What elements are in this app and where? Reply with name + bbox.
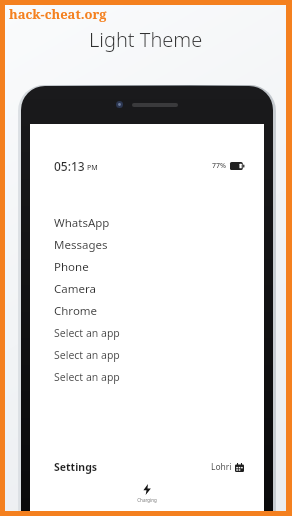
button[interactable]: Phone <box>30 256 264 278</box>
staticText: 05:13 <box>54 158 85 174</box>
button[interactable]: Lohri <box>211 461 244 473</box>
button[interactable]: Select an app <box>30 322 264 344</box>
staticText: WhatsApp <box>54 215 110 231</box>
staticText: Phone <box>54 259 89 275</box>
staticText: Messages <box>54 237 108 253</box>
staticText: Select an app <box>54 348 120 362</box>
staticText: PM <box>87 163 98 173</box>
staticText: Charging <box>137 497 157 503</box>
staticText: Select an app <box>54 326 120 340</box>
button[interactable]: Messages <box>30 234 264 256</box>
button[interactable]: Settings <box>54 460 98 474</box>
staticText: 77% <box>212 161 226 171</box>
other: Charging <box>143 484 151 495</box>
button[interactable]: Select an app <box>30 344 264 366</box>
button[interactable]: WhatsApp <box>30 212 264 234</box>
staticText: Lohri <box>211 461 232 473</box>
button[interactable]: Chrome <box>30 300 264 322</box>
staticText: hack-cheat.org <box>9 5 107 23</box>
other: Calendar <box>235 463 244 472</box>
staticText: Select an app <box>54 370 120 384</box>
staticText: Chrome <box>54 303 98 319</box>
button[interactable]: Camera <box>30 278 264 300</box>
staticText: Light Theme <box>89 26 203 53</box>
staticText: Settings <box>54 460 98 474</box>
button[interactable]: Select an app <box>30 366 264 388</box>
staticText: Camera <box>54 281 96 297</box>
